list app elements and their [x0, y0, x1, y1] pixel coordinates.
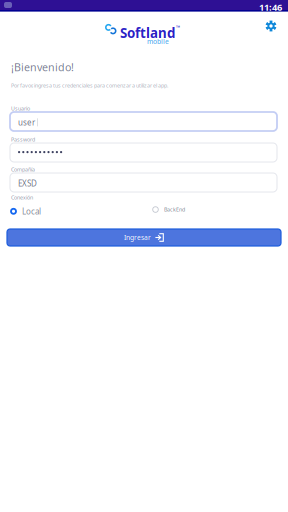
staticText: 11:46: [259, 1, 282, 13]
staticText: Local: [22, 206, 41, 217]
staticText: ¡Bienvenido!: [11, 60, 74, 74]
button[interactable]: Ingresar: [7, 229, 281, 246]
staticText: Ingresar: [124, 233, 151, 242]
staticText: Usuario: [11, 105, 30, 112]
staticText: ™: [176, 24, 180, 31]
staticText: Compañía: [11, 166, 35, 173]
staticText: user: [18, 117, 35, 128]
staticText: Por favor, ingresa tus credenciales para…: [11, 82, 168, 89]
staticText: Password: [11, 136, 35, 143]
staticText: mobile: [147, 37, 169, 46]
button[interactable]: Local: [8, 204, 43, 219]
staticText: EXSD: [18, 178, 37, 189]
staticText: Conexión: [11, 194, 33, 201]
button[interactable]: BackEnd: [150, 204, 187, 215]
staticText: Softland: [120, 24, 175, 42]
button[interactable]: Settings: [259, 14, 283, 38]
staticText: BackEnd: [164, 206, 185, 213]
